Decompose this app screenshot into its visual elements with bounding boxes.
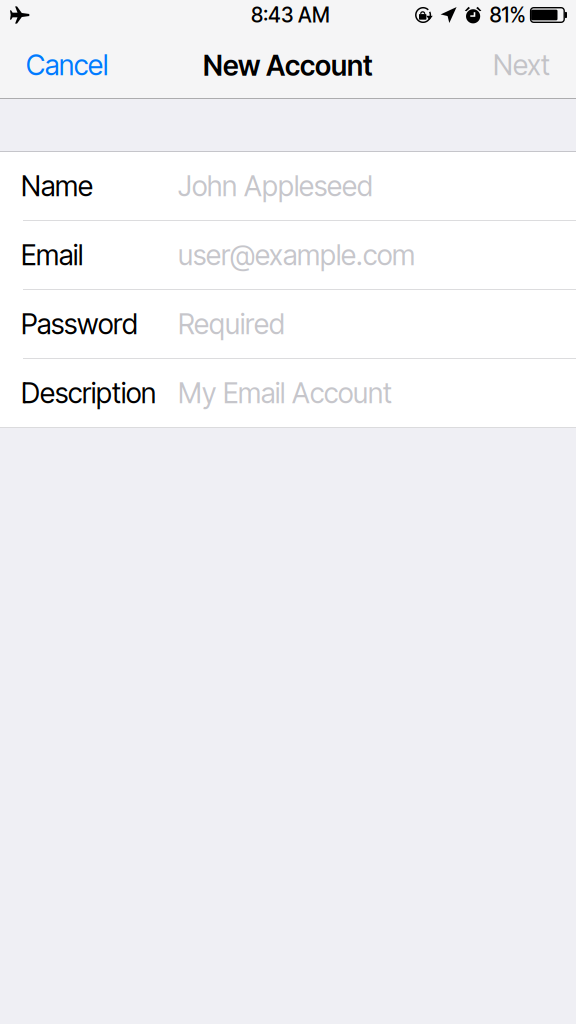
staticText: Email	[21, 238, 83, 272]
staticText: Name	[21, 169, 93, 203]
staticText: Password	[21, 307, 138, 341]
button[interactable]: Name	[0, 152, 576, 221]
staticText: My Email Account	[178, 376, 392, 410]
staticText: John Appleseed	[178, 169, 373, 203]
button[interactable]: Next	[482, 33, 561, 95]
staticText: New Account	[203, 49, 373, 82]
staticText: Required	[178, 307, 285, 341]
button[interactable]: Email	[0, 221, 576, 290]
button[interactable]: Description	[0, 359, 576, 427]
staticText: 8:43 AM	[251, 2, 330, 27]
staticText: Description	[21, 376, 156, 410]
staticText: user@example.com	[178, 238, 415, 272]
button[interactable]: Cancel	[15, 33, 119, 95]
staticText: Next	[493, 48, 550, 82]
staticText: Cancel	[26, 48, 108, 82]
staticText: 81%	[490, 2, 526, 27]
button[interactable]: Password	[0, 290, 576, 359]
